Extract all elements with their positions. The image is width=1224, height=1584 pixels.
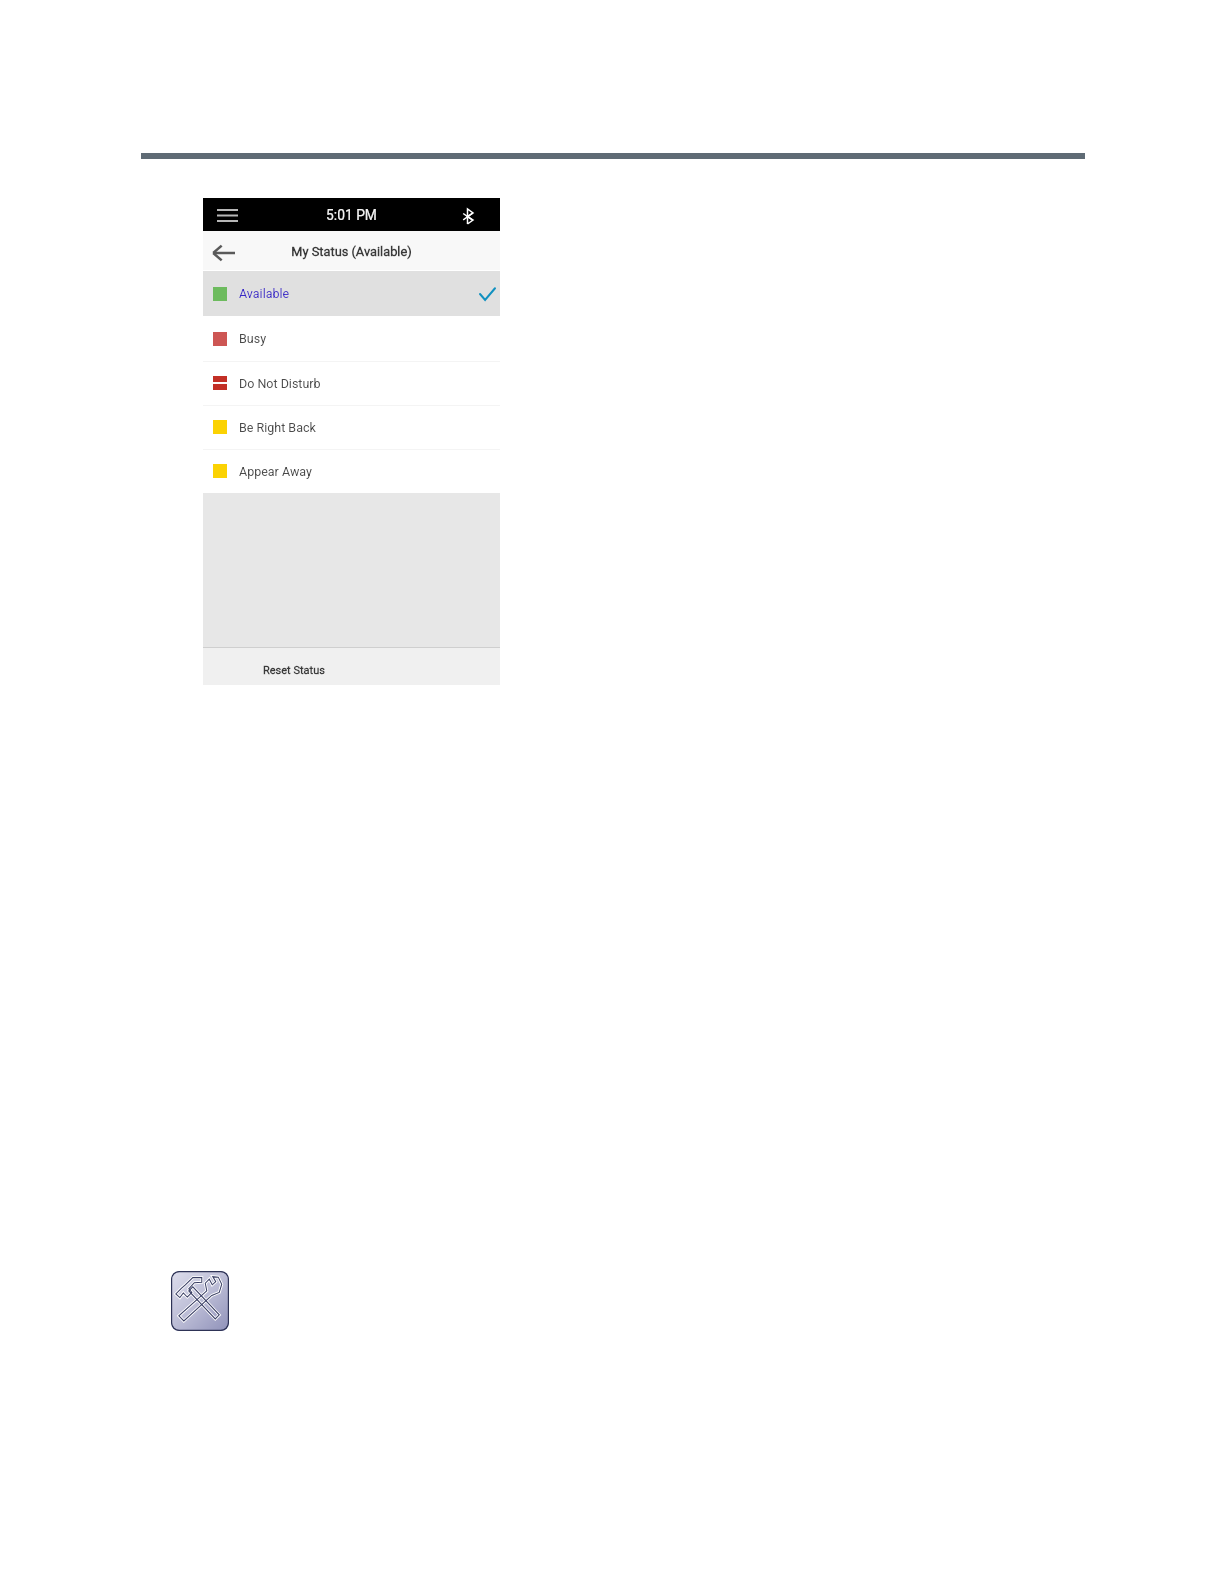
- staticText: My Status (Available): [203, 244, 500, 259]
- button[interactable]: Back: [201, 233, 246, 272]
- button[interactable]: Menu: [204, 199, 250, 232]
- staticText: Available: [239, 286, 290, 301]
- button[interactable]: Reset Status: [203, 648, 500, 685]
- button[interactable]: Appear Away: [203, 449, 500, 493]
- staticText: 5:01 PM: [203, 207, 500, 223]
- button[interactable]: Bluetooth: [444, 200, 492, 233]
- button[interactable]: Do Not Disturb: [203, 361, 500, 405]
- button[interactable]: Available: [203, 271, 500, 316]
- button[interactable]: Tools: [171, 1271, 229, 1331]
- button[interactable]: Be Right Back: [203, 405, 500, 449]
- button[interactable]: Busy: [203, 316, 500, 361]
- staticText: Be Right Back: [239, 420, 316, 435]
- staticText: Busy: [239, 331, 267, 346]
- staticText: Do Not Disturb: [239, 376, 321, 391]
- staticText: Appear Away: [239, 464, 312, 479]
- staticText: Reset Status: [263, 664, 325, 677]
